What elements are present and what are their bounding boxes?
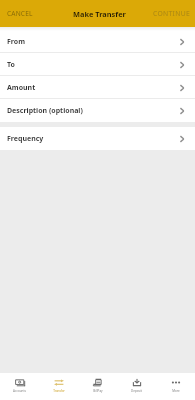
button[interactable]: Description (optional) — [0, 99, 195, 122]
button[interactable]: CONTINUE — [148, 0, 195, 27]
staticText: CONTINUE — [153, 9, 191, 18]
staticText: Amount — [7, 83, 36, 93]
staticText: Transfer — [53, 389, 65, 393]
button[interactable]: Accounts — [0, 373, 39, 400]
staticText: BillPay — [93, 389, 103, 393]
button[interactable]: From — [0, 30, 195, 53]
button[interactable]: Transfer — [39, 373, 78, 400]
staticText: CANCEL — [7, 9, 33, 18]
button[interactable]: CANCEL — [0, 0, 40, 27]
button[interactable]: Deposit — [117, 373, 156, 400]
staticText: Deposit — [131, 389, 142, 393]
button[interactable]: More — [156, 373, 195, 400]
staticText: To — [7, 60, 15, 70]
staticText: Description (optional) — [7, 106, 83, 116]
button[interactable]: To — [0, 53, 195, 76]
staticText: Frequency — [7, 134, 44, 144]
button[interactable]: Frequency — [0, 127, 195, 150]
staticText: Accounts — [13, 389, 26, 393]
button[interactable]: Amount — [0, 76, 195, 99]
staticText: Make Transfer — [73, 9, 126, 19]
staticText: More — [172, 389, 180, 393]
button[interactable]: BillPay — [78, 373, 117, 400]
staticText: From — [7, 37, 26, 47]
